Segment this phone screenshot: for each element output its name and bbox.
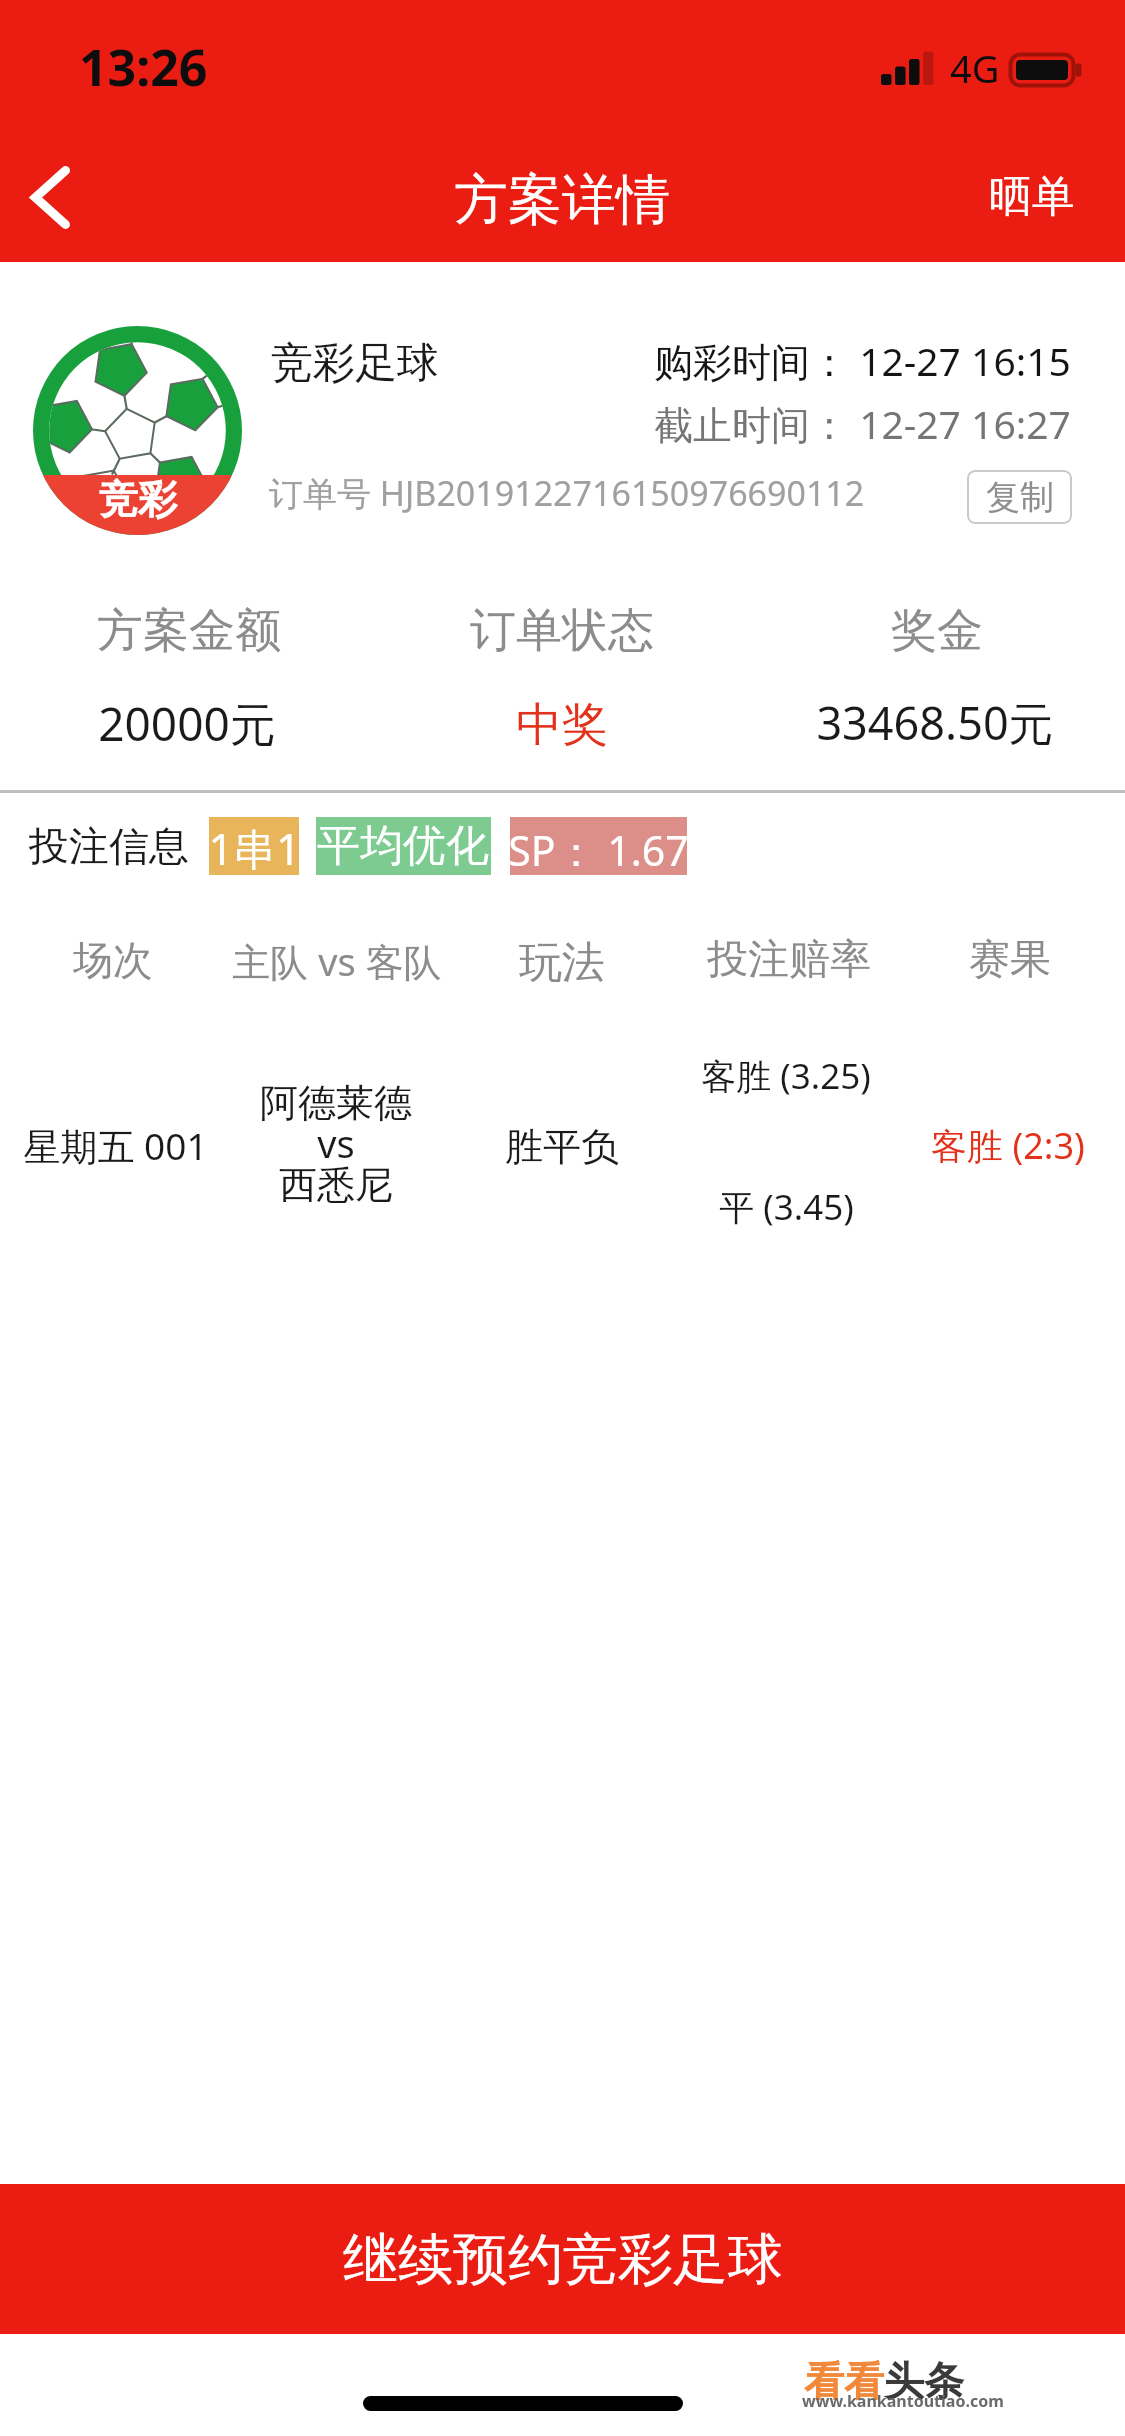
button[interactable]	[0, 1030, 1125, 1260]
staticText: 截止时间： 12-27 16:27	[654, 397, 1071, 450]
staticText: 投注信息	[29, 821, 189, 871]
staticText: 订单状态	[470, 602, 654, 660]
staticText: 20000元	[98, 692, 276, 755]
staticText: 复制	[986, 476, 1054, 519]
staticText: 看看	[804, 2356, 884, 2406]
staticText: 奖金	[891, 602, 983, 660]
staticText: SP： 1.67	[508, 822, 689, 878]
staticText: 场次	[73, 935, 153, 985]
staticText: 购彩时间： 12-27 16:15	[654, 334, 1071, 387]
staticText: 阿德莱德	[260, 1079, 412, 1127]
staticText: 订单号 HJB2019122716150976690112	[269, 470, 865, 516]
staticText: 赛果	[969, 934, 1051, 986]
staticText: 平均优化	[317, 819, 489, 873]
staticText: 主队 vs 客队	[232, 935, 442, 987]
button[interactable]: 复制	[967, 470, 1072, 524]
staticText: 玩法	[519, 936, 605, 990]
staticText: 13:26	[79, 33, 208, 101]
staticText: vs	[317, 1117, 355, 1169]
button[interactable]: Back	[0, 132, 110, 262]
staticText: 竞彩	[99, 475, 177, 524]
staticText: 胜平负	[505, 1123, 619, 1171]
staticText: 客胜 (2:3)	[931, 1121, 1085, 1170]
staticText: 晒单	[989, 170, 1075, 224]
staticText: 竞彩足球	[271, 337, 439, 390]
staticText: 中奖	[516, 696, 608, 754]
staticText: 方案详情	[454, 166, 670, 234]
staticText: 继续预约竞彩足球	[343, 2225, 783, 2294]
button[interactable]	[0, 800, 1125, 892]
staticText: www.kankantoutiao.com	[802, 2390, 1004, 2412]
staticText: 投注赔率	[707, 934, 871, 986]
staticText: 客胜 (3.25)	[701, 1052, 871, 1100]
staticText: 1串1	[208, 819, 301, 878]
staticText: 星期五 001	[23, 1120, 208, 1171]
button[interactable]: 晒单	[955, 146, 1125, 248]
staticText: 西悉尼	[279, 1161, 393, 1209]
button[interactable]: 继续预约竞彩足球	[0, 2184, 1125, 2334]
staticText: 4G	[950, 42, 1000, 94]
staticText: 33468.50元	[816, 692, 1054, 753]
staticText: 平 (3.45)	[719, 1183, 854, 1231]
staticText: 头条	[884, 2356, 964, 2406]
staticText: 方案金额	[97, 602, 281, 660]
